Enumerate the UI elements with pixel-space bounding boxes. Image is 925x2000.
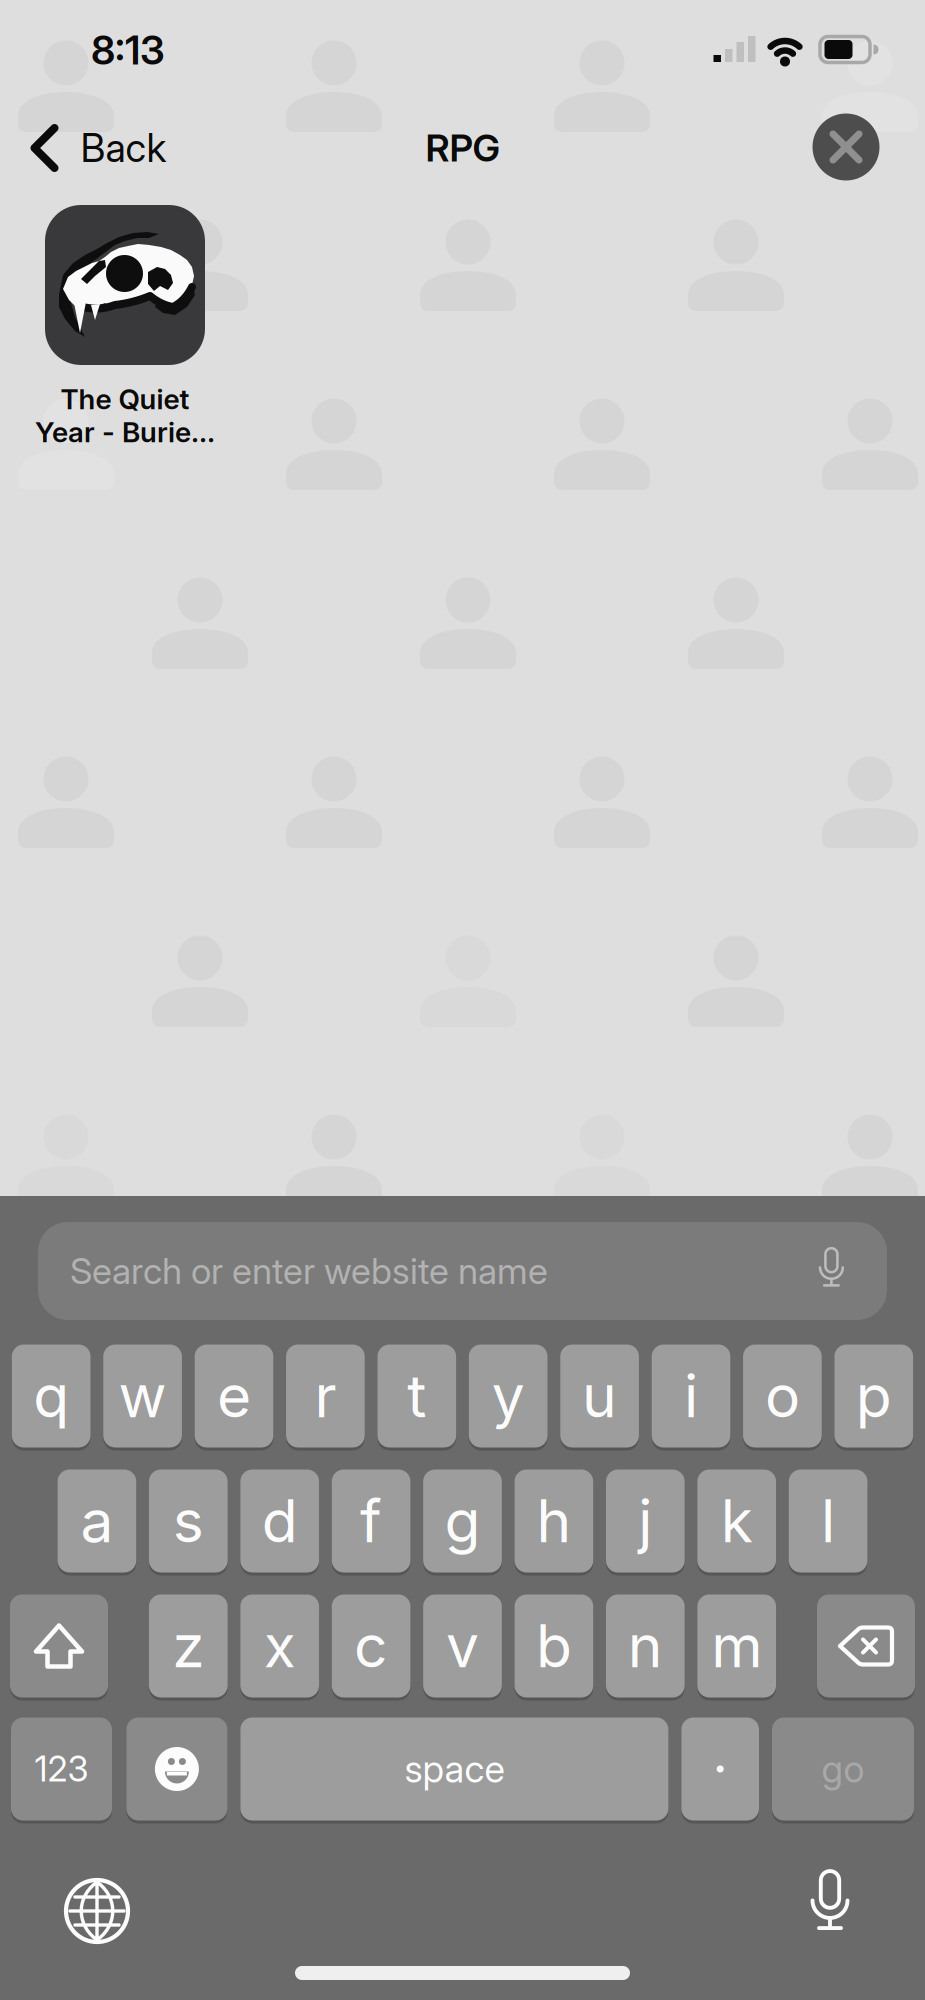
button[interactable] [681, 1716, 759, 1822]
staticText: c [354, 1611, 388, 1681]
button[interactable]: l [789, 1468, 867, 1574]
staticText: l [821, 1486, 835, 1556]
staticText: 8:13 [91, 26, 165, 74]
staticText: go [821, 1747, 864, 1791]
staticText: n [628, 1611, 663, 1681]
staticText: 123 [34, 1749, 88, 1789]
staticText: k [721, 1486, 753, 1556]
button[interactable]: t [377, 1343, 456, 1449]
button[interactable]: space [240, 1716, 668, 1822]
staticText: The Quiet [60, 382, 189, 415]
button[interactable]: v [423, 1593, 502, 1699]
staticText: b [536, 1611, 572, 1681]
staticText: a [80, 1486, 113, 1556]
staticText: z [172, 1611, 204, 1681]
staticText: r [314, 1361, 336, 1431]
button[interactable]: q [12, 1343, 90, 1449]
button[interactable]: n [606, 1593, 685, 1699]
button[interactable] [126, 1716, 227, 1822]
button[interactable]: j [606, 1468, 685, 1574]
button[interactable]: z [149, 1593, 228, 1699]
staticText: w [119, 1361, 167, 1431]
button[interactable] [817, 1593, 915, 1699]
button[interactable] [10, 1593, 108, 1699]
button[interactable]: w [103, 1343, 182, 1449]
button[interactable]: x [240, 1593, 319, 1699]
button[interactable]: s [149, 1468, 228, 1574]
button[interactable]: 123 [11, 1716, 112, 1822]
button[interactable] [797, 1867, 863, 1945]
button[interactable]: go [772, 1716, 914, 1822]
staticText: x [264, 1611, 296, 1681]
staticText: u [582, 1361, 617, 1431]
staticText: f [360, 1486, 382, 1556]
staticText: o [765, 1361, 800, 1431]
staticText: space [404, 1747, 504, 1791]
button[interactable]: p [834, 1343, 913, 1449]
staticText: j [638, 1486, 652, 1556]
staticText: RPG [425, 126, 500, 170]
button[interactable]: k [697, 1468, 776, 1574]
button[interactable]: h [514, 1468, 593, 1574]
button[interactable]: e [195, 1343, 273, 1449]
button[interactable] [812, 113, 879, 180]
button[interactable] [45, 205, 205, 365]
button[interactable]: i [652, 1343, 730, 1449]
staticText: g [444, 1486, 480, 1556]
button[interactable]: Search or enter website name [38, 1222, 887, 1320]
staticText: d [262, 1486, 298, 1556]
staticText: e [217, 1361, 251, 1431]
staticText: Year - Burie… [35, 415, 215, 448]
staticText: h [536, 1486, 571, 1556]
button[interactable] [66, 1880, 128, 1942]
staticText: t [407, 1361, 426, 1431]
staticText: v [446, 1611, 479, 1681]
button[interactable]: Back [31, 125, 166, 171]
button[interactable]: d [240, 1468, 319, 1574]
button[interactable]: m [697, 1593, 776, 1699]
staticText: p [856, 1361, 892, 1431]
button[interactable]: r [286, 1343, 365, 1449]
button[interactable]: o [743, 1343, 822, 1449]
button[interactable]: b [514, 1593, 593, 1699]
button[interactable]: f [332, 1468, 410, 1574]
staticText: s [173, 1486, 204, 1556]
button[interactable]: u [560, 1343, 639, 1449]
staticText: i [684, 1361, 698, 1431]
staticText: y [492, 1361, 525, 1431]
staticText: Search or enter website name [70, 1250, 548, 1292]
staticText: q [33, 1361, 69, 1431]
button[interactable]: a [57, 1468, 136, 1574]
button[interactable]: c [332, 1593, 410, 1699]
button[interactable]: y [469, 1343, 547, 1449]
staticText: m [711, 1611, 762, 1681]
button[interactable]: g [423, 1468, 502, 1574]
staticText: Back [80, 125, 166, 171]
